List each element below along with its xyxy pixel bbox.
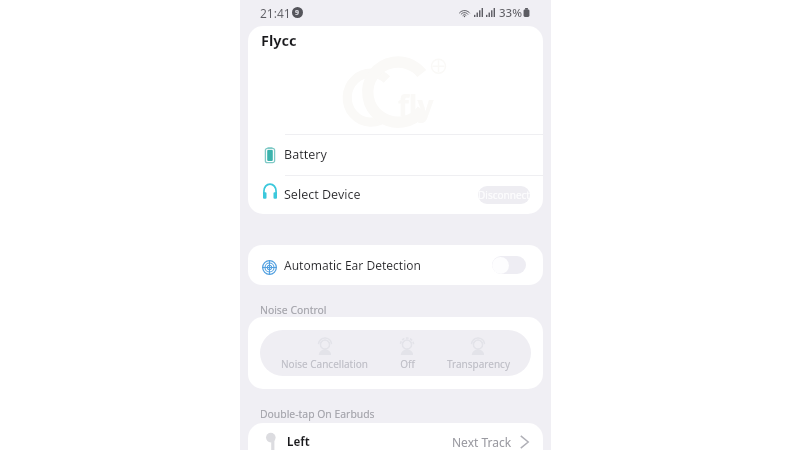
button[interactable]: Left (248, 423, 543, 450)
button[interactable]: Noise Cancellation (260, 330, 389, 376)
staticText: fly (398, 86, 434, 124)
staticText: Flycc (261, 30, 297, 50)
staticText: Transparency (447, 357, 510, 371)
staticText: Disconnect (478, 188, 530, 202)
button[interactable]: Disconnect (477, 186, 530, 204)
button[interactable]: Transparency (425, 330, 531, 376)
staticText: 33% (499, 5, 522, 21)
staticText: Noise Cancellation (281, 357, 368, 371)
button[interactable]: Select Device (248, 175, 543, 214)
staticText: Next Track (452, 434, 512, 450)
staticText: Select Device (284, 186, 361, 203)
button[interactable]: Battery (248, 134, 543, 175)
staticText: Battery (284, 146, 327, 163)
button[interactable]: Toggle Automatic Ear Detection (492, 256, 526, 274)
staticText: Off (400, 357, 415, 371)
staticText: Automatic Ear Detection (284, 257, 421, 273)
button[interactable]: Automatic Ear Detection (248, 245, 543, 285)
button[interactable]: Off (389, 330, 425, 376)
staticText: Noise Control (260, 303, 327, 317)
staticText: 21:41 (260, 5, 291, 21)
staticText: 9 (295, 8, 300, 18)
staticText: Left (287, 434, 310, 450)
staticText: Double-tap On Earbuds (260, 407, 375, 421)
